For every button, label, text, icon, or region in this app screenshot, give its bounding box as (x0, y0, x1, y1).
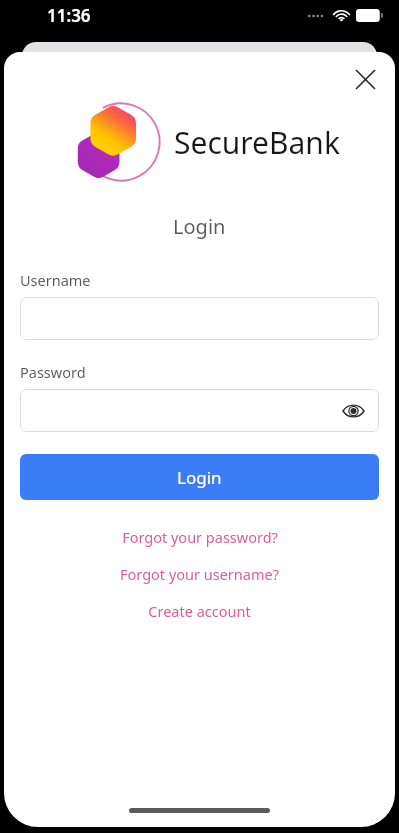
staticText: Login (173, 213, 226, 240)
button[interactable]: Show password (20, 389, 379, 432)
button[interactable]: Close (343, 57, 387, 101)
staticText: Create account (148, 601, 251, 621)
staticText: SecureBank (174, 122, 340, 163)
staticText: Password (20, 362, 86, 382)
staticText: Forgot your username? (120, 564, 279, 584)
button[interactable]: Forgot your username? (110, 562, 289, 586)
staticText: Login (177, 466, 222, 489)
button[interactable]: Forgot your password? (112, 525, 288, 549)
button[interactable]: Show password (335, 393, 371, 429)
staticText: 11:36 (47, 4, 91, 27)
staticText: Forgot your password? (122, 527, 278, 547)
button[interactable]: Create account (138, 599, 261, 623)
button[interactable]: Login (20, 454, 379, 500)
button[interactable] (20, 297, 379, 340)
staticText: Username (20, 270, 91, 290)
